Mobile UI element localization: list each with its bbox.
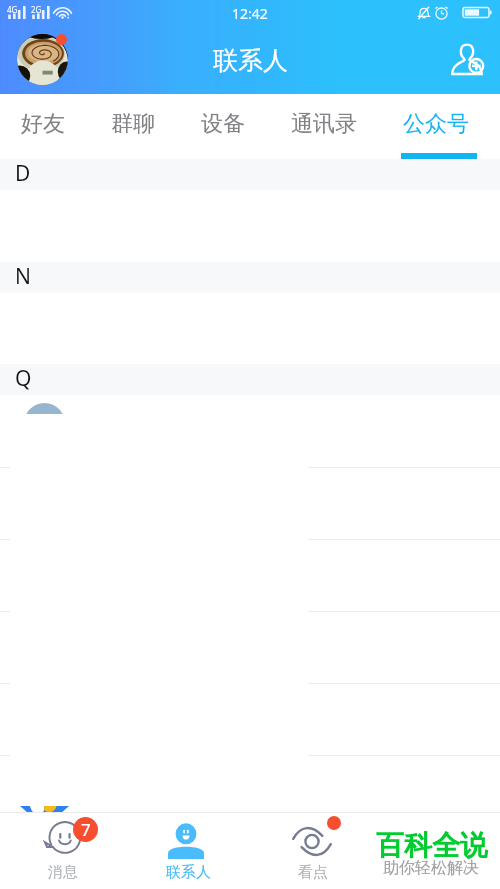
button[interactable] [0, 756, 500, 828]
staticText: 4G [7, 4, 18, 15]
staticText: 公众号 [403, 110, 469, 138]
staticText: 2G [31, 4, 42, 15]
staticText: Q [15, 364, 32, 393]
button[interactable]: 7 [0, 812, 125, 889]
button[interactable]: Profile [17, 34, 68, 85]
button[interactable] [0, 395, 500, 467]
button[interactable]: 联系人 [125, 812, 250, 889]
staticText: 联系人 [213, 45, 288, 76]
button[interactable]: 好友 [11, 94, 75, 159]
button[interactable]: Add contact [443, 35, 491, 82]
staticText: 12:42 [232, 4, 268, 23]
staticText: 消息 [48, 863, 78, 882]
staticText: 好友 [21, 110, 65, 138]
staticText: 7 [81, 818, 91, 841]
staticText: 助你轻松解决 [383, 858, 479, 878]
button[interactable]: 群聊 [101, 94, 165, 159]
button[interactable]: 通讯录 [281, 94, 367, 159]
button[interactable]: 公众号 [393, 94, 479, 159]
staticText: 设备 [201, 110, 245, 138]
staticText: N [15, 262, 31, 291]
staticText: 看点 [298, 863, 328, 882]
button[interactable]: 百科全说 [375, 812, 500, 889]
staticText: D [15, 159, 31, 188]
button[interactable]: 看点 [250, 812, 375, 889]
button[interactable]: 设备 [191, 94, 255, 159]
staticText: 百科全说 [376, 828, 488, 863]
staticText: 联系人 [166, 863, 211, 882]
staticText: 群聊 [111, 110, 155, 138]
staticText: 通讯录 [291, 110, 357, 138]
